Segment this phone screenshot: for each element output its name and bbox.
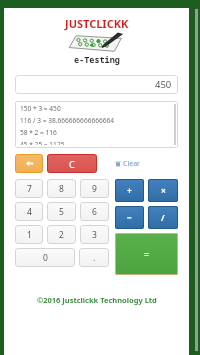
- button[interactable]: 9: [80, 179, 109, 198]
- staticText: 116 / 3 = 38.666666666666664: [20, 116, 115, 125]
- staticText: 450: [155, 78, 172, 91]
- staticText: 6: [92, 206, 97, 218]
- staticText: −: [127, 212, 132, 224]
- staticText: ×: [161, 185, 166, 197]
- staticText: +: [127, 185, 132, 197]
- staticText: ©2016 Justclickk Technology Ltd: [37, 295, 157, 305]
- button[interactable]: 8: [47, 179, 76, 198]
- staticText: 5: [59, 206, 64, 218]
- staticText: 2: [59, 229, 64, 241]
- button[interactable]: 5: [47, 202, 76, 221]
- button[interactable]: 0: [15, 248, 75, 267]
- button[interactable]: C: [47, 154, 97, 173]
- staticText: 58 * 2 = 116: [20, 128, 57, 137]
- staticText: JUSTCLICKK: [65, 16, 129, 31]
- button[interactable]: 2: [47, 225, 76, 244]
- staticText: 4: [27, 206, 32, 218]
- staticText: 150 * 3 = 450: [20, 104, 61, 113]
- button[interactable]: Clear: [113, 156, 142, 172]
- staticText: 45 * 25 = 1125: [20, 140, 65, 145]
- button[interactable]: Divide: [148, 206, 178, 229]
- staticText: C: [69, 158, 75, 170]
- staticText: e-Testing: [74, 54, 120, 66]
- button[interactable]: =: [115, 233, 178, 275]
- staticText: 1: [27, 229, 32, 241]
- staticText: 3: [92, 229, 97, 241]
- staticText: /: [161, 212, 165, 224]
- button[interactable]: 7: [15, 179, 43, 198]
- button[interactable]: 4: [15, 202, 43, 221]
- button[interactable]: 450: [15, 75, 178, 94]
- staticText: =: [144, 248, 150, 260]
- staticText: .: [93, 252, 96, 264]
- staticText: 8: [59, 183, 64, 195]
- button[interactable]: 6: [80, 202, 109, 221]
- staticText: 9: [92, 183, 97, 195]
- staticText: 7: [27, 183, 32, 195]
- button[interactable]: Minus: [115, 206, 144, 229]
- staticText: Clear: [123, 159, 140, 169]
- button[interactable]: Backspace: [15, 154, 43, 173]
- button[interactable]: 1: [15, 225, 43, 244]
- button[interactable]: Plus: [115, 179, 144, 202]
- button[interactable]: 3: [80, 225, 109, 244]
- button[interactable]: .: [79, 248, 109, 267]
- staticText: 0: [43, 252, 48, 264]
- button[interactable]: Multiply: [148, 179, 178, 202]
